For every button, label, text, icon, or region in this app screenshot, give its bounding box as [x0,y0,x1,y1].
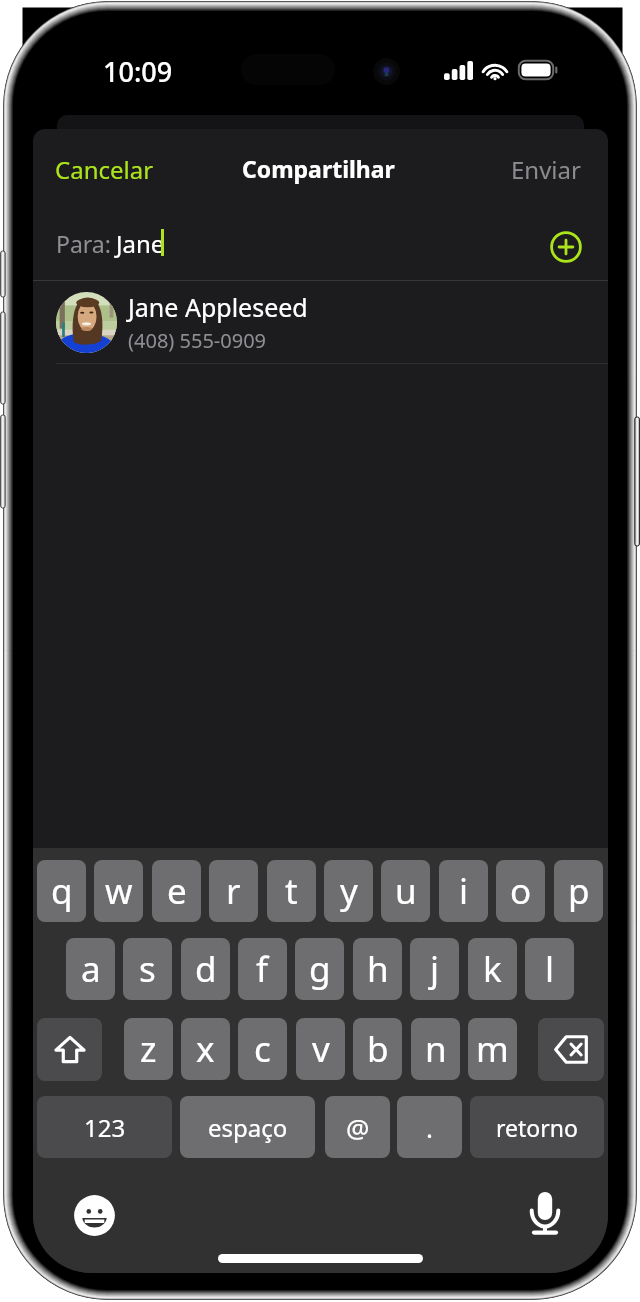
staticText: Jane [116,227,165,260]
button[interactable]: Emoji [71,1192,118,1239]
other: Apagar [554,1035,588,1064]
button[interactable]: . [397,1096,462,1158]
button[interactable]: Cancelar [41,144,168,195]
staticText: w [105,867,133,915]
staticText: c [254,1025,271,1073]
staticText: v [312,1025,330,1073]
button[interactable]: s [123,938,172,1000]
staticText: e [167,867,187,915]
button[interactable]: x [181,1018,230,1080]
button[interactable]: e [152,860,201,922]
button[interactable]: d [181,938,230,1000]
staticText: espaço [208,1111,288,1144]
staticText: f [256,945,269,993]
button[interactable]: b [353,1018,402,1080]
button[interactable]: n [411,1018,460,1080]
button[interactable]: espaço [180,1096,315,1158]
button[interactable]: f [238,938,287,1000]
staticText: k [483,945,502,993]
staticText: 123 [84,1111,126,1144]
staticText: @ [346,1110,370,1145]
button[interactable]: p [554,860,603,922]
button[interactable]: l [525,938,574,1000]
staticText: l [545,945,555,993]
staticText: retorno [496,1112,578,1143]
staticText: j [430,945,440,993]
button[interactable]: Ditado por voz [527,1189,563,1239]
button[interactable]: m [468,1018,517,1080]
staticText: t [285,867,298,915]
other: Shift [54,1035,86,1064]
button[interactable]: a [66,938,115,1000]
staticText: h [367,945,389,993]
button[interactable]: t [267,860,316,922]
button[interactable]: w [94,860,143,922]
staticText: a [81,945,101,993]
staticText: x [196,1025,215,1073]
staticText: z [140,1025,157,1073]
staticText: Jane Appleseed [128,290,308,324]
staticText: o [510,867,532,915]
button[interactable]: Enviar [497,144,595,195]
staticText: r [226,867,241,915]
staticText: Cancelar [55,153,154,186]
button[interactable]: z [124,1018,173,1080]
button[interactable]: o [496,860,545,922]
button[interactable]: 123 [37,1096,172,1158]
button[interactable]: g [295,938,344,1000]
staticText: i [459,867,469,915]
staticText: 10:09 [103,53,173,90]
staticText: y [340,867,358,915]
button[interactable]: c [238,1018,287,1080]
button[interactable]: k [468,938,517,1000]
staticText: n [425,1025,447,1073]
button[interactable]: i [439,860,488,922]
staticText: Para: [56,228,111,259]
button[interactable]: Jane Appleseed [33,281,608,363]
button[interactable]: h [353,938,402,1000]
staticText: g [309,945,331,993]
staticText: b [367,1025,389,1073]
staticText: p [568,867,590,915]
button[interactable]: Apagar [538,1018,604,1081]
button[interactable]: y [324,860,373,922]
button[interactable]: u [381,860,430,922]
staticText: . [426,1110,433,1145]
button[interactable]: Shift [37,1018,102,1081]
button[interactable]: j [410,938,459,1000]
button[interactable]: q [37,860,86,922]
staticText: d [195,945,217,993]
staticText: Compartilhar [242,153,395,184]
staticText: Enviar [511,153,581,186]
button[interactable]: v [296,1018,345,1080]
button[interactable]: retorno [470,1096,604,1158]
staticText: s [139,945,156,993]
button[interactable]: Adicionar contato [543,224,588,269]
staticText: u [395,867,417,915]
staticText: q [51,867,73,915]
staticText: m [476,1025,509,1073]
staticText: (408) 555-0909 [128,327,267,354]
button[interactable]: r [209,860,258,922]
button[interactable]: @ [325,1096,390,1158]
